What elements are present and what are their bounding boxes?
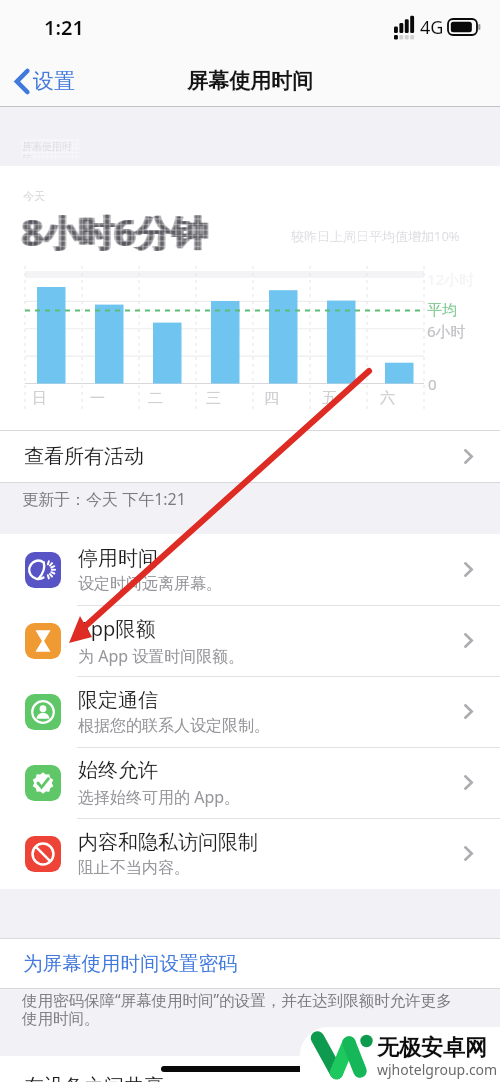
staticText: 屏幕使用时间: [22, 140, 80, 158]
staticText: 选择始终可用的 App。: [78, 786, 241, 808]
staticText: 1:21: [44, 14, 84, 41]
staticText: 六: [380, 389, 395, 408]
staticText: 较昨日上周日平均值增加10%: [291, 227, 460, 245]
button[interactable]: 为屏幕使用时间设置密码: [0, 938, 500, 988]
staticText: 平均: [427, 301, 457, 320]
button[interactable]: 内容和隐私访问限制: [0, 818, 500, 889]
staticText: 设定时间远离屏幕。: [78, 574, 222, 594]
staticText: 二: [148, 389, 163, 408]
staticText: 为屏幕使用时间设置密码: [23, 951, 238, 976]
staticText: App限额: [78, 615, 156, 642]
staticText: 4G: [420, 15, 444, 40]
staticText: 日: [32, 389, 47, 408]
staticText: 为 App 设置时间限额。: [78, 645, 245, 667]
staticText: 停用时间: [78, 546, 158, 571]
button[interactable]: 查看所有活动: [0, 430, 500, 482]
other: Back: [15, 69, 29, 94]
staticText: 8小时6分钟: [23, 208, 209, 252]
staticText: 使用密码保障“屏幕使用时间”的设置，并在达到限额时允许更多 使用时间。: [22, 989, 452, 1029]
button[interactable]: 始终允许: [0, 747, 500, 818]
staticText: 限定通信: [78, 688, 158, 713]
staticText: 8小时6分钟: [20, 208, 206, 252]
staticText: wjhotelgroup.com: [377, 1060, 498, 1079]
staticText: 查看所有活动: [24, 444, 144, 469]
staticText: 设置: [33, 68, 75, 94]
staticText: 0: [428, 374, 437, 394]
staticText: 8小时6分钟: [22, 208, 208, 252]
staticText: 更新于：今天 下午1:21: [22, 488, 186, 510]
button[interactable]: Back: [15, 68, 75, 94]
button[interactable]: 停用时间: [0, 534, 500, 605]
staticText: 阻止不当内容。: [78, 858, 190, 878]
staticText: 内容和隐私访问限制: [78, 830, 258, 855]
staticText: 在设备之间共享: [24, 1074, 164, 1082]
staticText: 屏幕使用时间: [187, 68, 313, 94]
staticText: 根据您的联系人设定限制。: [78, 716, 270, 736]
staticText: 四: [264, 389, 279, 408]
staticText: 8小时6分钟: [21, 208, 207, 252]
other: Logo: [300, 1027, 500, 1082]
staticText: 五: [322, 389, 337, 408]
staticText: 无极安卓网: [377, 1034, 487, 1062]
staticText: 12小时: [427, 269, 475, 289]
staticText: 今天: [23, 189, 45, 203]
button[interactable]: App限额: [0, 605, 500, 676]
staticText: 一: [90, 389, 105, 408]
staticText: 8小时6分钟: [24, 208, 210, 252]
button[interactable]: 限定通信: [0, 676, 500, 747]
staticText: 三: [206, 389, 221, 408]
staticText: 始终允许: [78, 758, 158, 783]
staticText: 6小时: [427, 321, 466, 341]
